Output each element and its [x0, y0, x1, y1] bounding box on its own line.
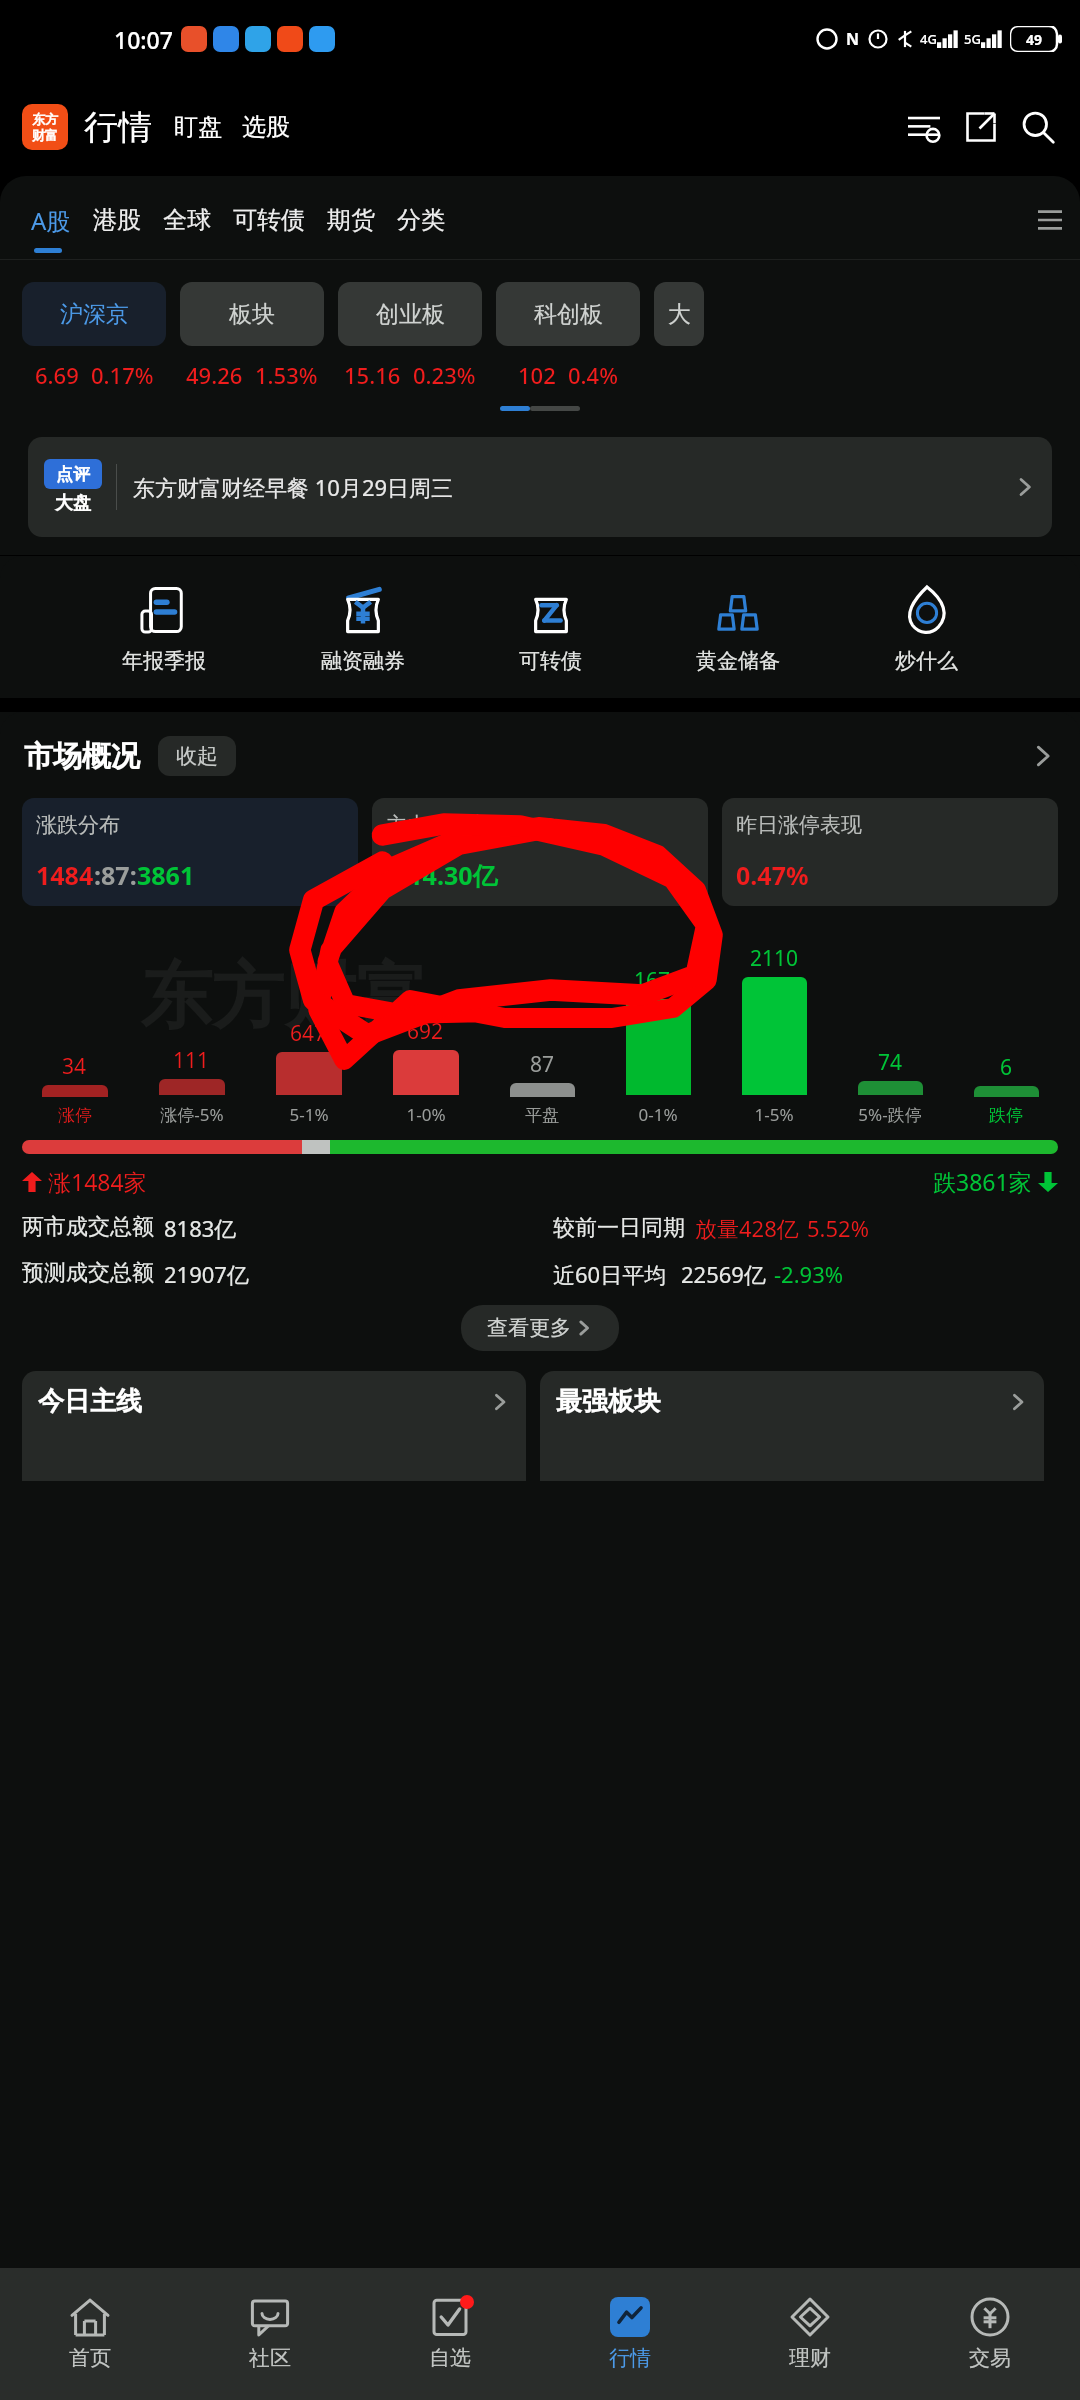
button[interactable]: More tabs	[1028, 198, 1072, 242]
staticText: 期货	[327, 205, 375, 235]
staticText: 收起	[176, 743, 218, 769]
button[interactable]: More	[1030, 743, 1056, 769]
button[interactable]: 可转债	[222, 205, 316, 235]
staticText: 0.4%	[568, 360, 618, 390]
button[interactable]: 创业板	[338, 282, 482, 346]
staticText: 111	[173, 1046, 210, 1075]
staticText: 今日主线	[38, 1385, 142, 1418]
button[interactable]: 可转债	[513, 584, 588, 676]
staticText: 两市成交总额	[22, 1213, 154, 1241]
staticText: 0.23%	[413, 360, 476, 390]
button[interactable]: 涨跌分布	[22, 798, 358, 906]
button[interactable]: 年报季报	[116, 584, 212, 676]
staticText: 市场概况	[24, 738, 140, 775]
staticText: 沪深京	[60, 300, 129, 329]
staticText: 首页	[69, 2345, 111, 2371]
staticText: 692	[407, 1017, 444, 1046]
staticText: 87	[530, 1050, 555, 1079]
staticText: 炒什么	[895, 648, 958, 674]
button[interactable]: 主力净流入	[372, 798, 708, 906]
button[interactable]: 查看更多	[461, 1305, 619, 1351]
button[interactable]: 黄金储备	[690, 584, 786, 676]
button[interactable]: 自选	[360, 2289, 540, 2379]
button[interactable]: 期货	[316, 205, 386, 235]
button[interactable]: A股	[20, 204, 82, 237]
staticText: 可转债	[233, 205, 305, 235]
button[interactable]: 行情	[540, 2289, 720, 2379]
staticText: 跌3861家	[933, 1166, 1032, 1197]
button[interactable]: 板块	[180, 282, 324, 346]
staticText: 查看更多	[487, 1315, 571, 1341]
button[interactable]: 理财	[720, 2289, 900, 2379]
staticText: N	[846, 28, 860, 50]
button[interactable]: 全球	[152, 205, 222, 235]
staticText: 年报季报	[122, 648, 206, 674]
button[interactable]: Filter	[904, 107, 944, 147]
staticText: 1671	[634, 966, 683, 995]
button[interactable]: 昨日涨停表现	[722, 798, 1058, 906]
staticText: 5.52%	[807, 1213, 869, 1243]
button[interactable]: 收起	[158, 736, 236, 776]
staticText: 东方	[32, 111, 58, 127]
button[interactable]: 港股	[82, 205, 152, 235]
staticText: 10:07	[114, 24, 173, 55]
staticText: A股	[31, 204, 71, 237]
staticText: 34	[62, 1052, 87, 1081]
staticText: 22569亿	[681, 1259, 766, 1289]
staticText: 融资融券	[321, 648, 405, 674]
staticText: 5%-跌停	[858, 1103, 922, 1126]
button[interactable]: 最强板块	[540, 1371, 1044, 1481]
staticText: 理财	[789, 2345, 831, 2371]
button[interactable]: 盯盘	[174, 112, 222, 142]
staticText: 1-5%	[754, 1103, 794, 1126]
button[interactable]: 沪深京	[22, 282, 166, 346]
staticText: 港股	[93, 205, 141, 235]
staticText: 1-0%	[406, 1103, 446, 1126]
button[interactable]: 炒什么	[889, 584, 964, 676]
staticText: 平盘	[525, 1105, 559, 1126]
staticText: 放量428亿	[695, 1213, 799, 1243]
staticText: 近60日平均	[553, 1259, 667, 1289]
button[interactable]: 分类	[386, 205, 456, 235]
staticText: 4G	[920, 30, 937, 48]
staticText: 0.17%	[91, 360, 154, 390]
button[interactable]: 点评	[28, 437, 1052, 537]
staticText: 可转债	[519, 648, 582, 674]
staticText: 全球	[163, 205, 211, 235]
staticText: 跌停	[989, 1105, 1023, 1126]
staticText: 科创板	[534, 300, 603, 329]
staticText: 21907亿	[164, 1259, 249, 1289]
button[interactable]: 行情	[84, 106, 152, 149]
staticText: 2110	[750, 944, 799, 973]
staticText: 74	[878, 1048, 903, 1077]
button[interactable]: 首页	[0, 2289, 180, 2379]
button[interactable]: 选股	[242, 112, 290, 142]
staticText: 3861	[137, 858, 195, 892]
staticText: 东方财富	[140, 952, 428, 1043]
staticText: 涨停-5%	[160, 1103, 224, 1126]
staticText: 昨日涨停表现	[736, 812, 862, 838]
button[interactable]: Share	[962, 108, 1000, 146]
staticText: 49	[1026, 30, 1043, 49]
staticText: 最强板块	[556, 1385, 660, 1418]
button[interactable]: Search	[1018, 107, 1058, 147]
button[interactable]: 今日主线	[22, 1371, 526, 1481]
button[interactable]: 科创板	[496, 282, 640, 346]
button[interactable]: 大	[654, 282, 704, 346]
staticText: 板块	[229, 300, 275, 329]
button[interactable]: 融资融券	[315, 584, 411, 676]
staticText: 大盘	[55, 492, 91, 515]
staticText: 0-1%	[638, 1103, 678, 1126]
staticText: :87:	[94, 858, 137, 892]
staticText: 东方财富财经早餐 10月29日周三	[133, 472, 454, 502]
staticText: 较前一日同期	[553, 1214, 685, 1242]
staticText: 49.26	[186, 360, 243, 390]
button[interactable]: 交易	[900, 2289, 1080, 2379]
staticText: -2.93%	[774, 1259, 844, 1289]
staticText: 1.53%	[255, 360, 318, 390]
staticText: 黄金储备	[696, 648, 780, 674]
staticText: 涨1484家	[48, 1166, 147, 1197]
staticText: 创业板	[376, 300, 445, 329]
button[interactable]: 东方财富	[22, 104, 68, 150]
button[interactable]: 社区	[180, 2289, 360, 2379]
